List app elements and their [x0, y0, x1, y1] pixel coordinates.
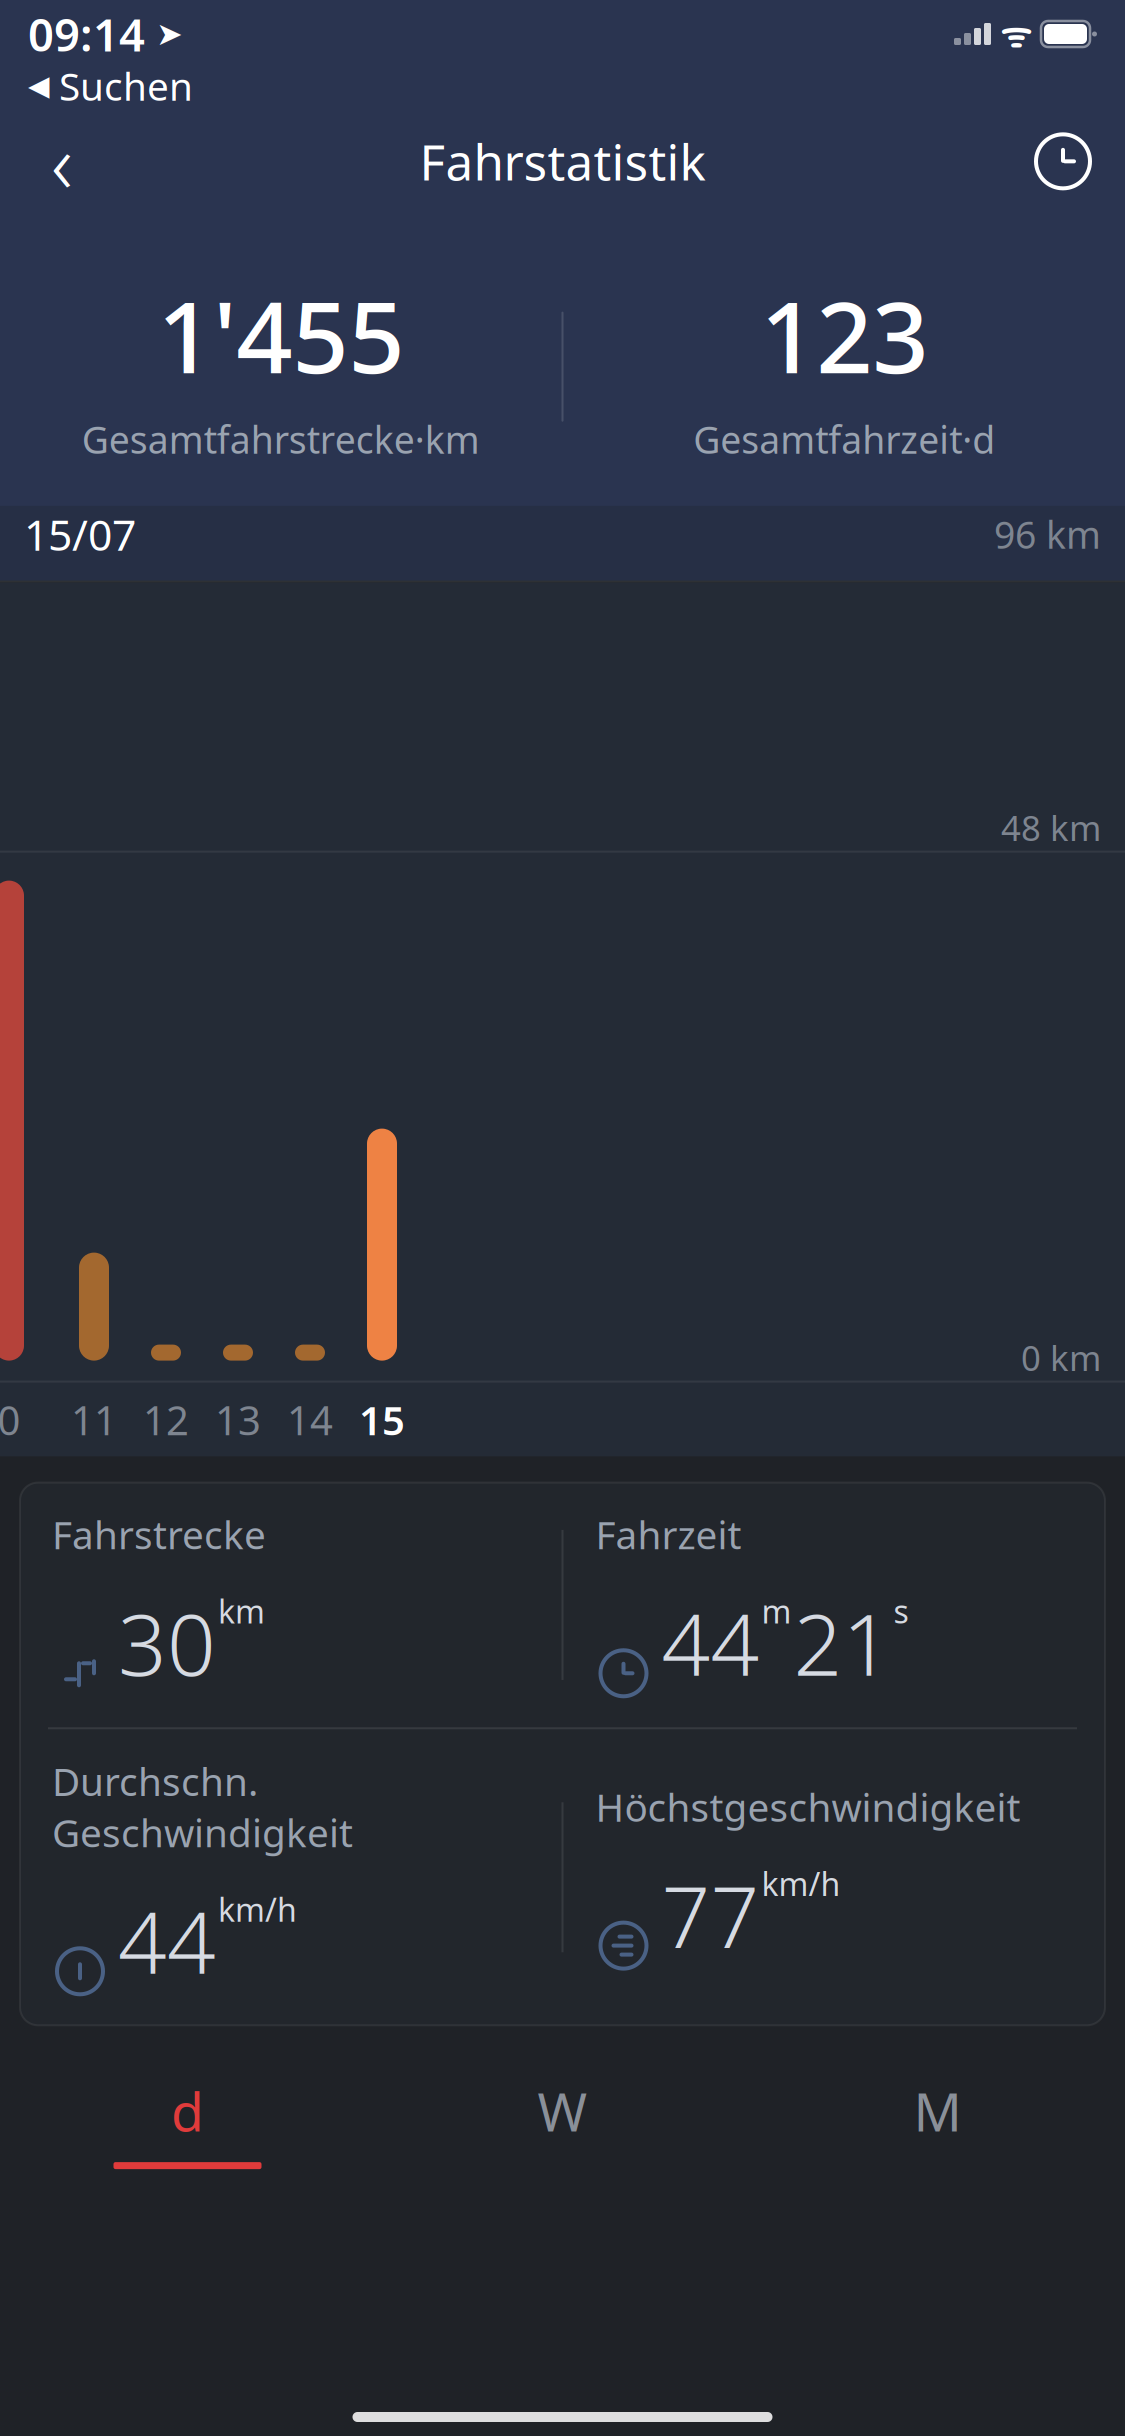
staticText: 14 [287, 1393, 333, 1446]
staticText: ᯤ [991, 11, 1041, 57]
staticText: km/h [218, 1888, 297, 1930]
staticText: km/h [761, 1862, 840, 1905]
staticText: 96 km [994, 509, 1101, 559]
staticText: km [218, 1590, 265, 1632]
staticText: 44 [661, 1586, 759, 1699]
staticText: ➤ [145, 16, 183, 52]
staticText: Gesamtfahrzeit·d [693, 414, 995, 464]
button[interactable]: ◀ [28, 60, 193, 111]
button[interactable]: d [0, 2055, 375, 2169]
staticText: 0 km [1021, 1335, 1101, 1381]
staticText: W [537, 2075, 587, 2146]
staticText: Höchstgeschwindigkeit [595, 1781, 1020, 1832]
staticText: 11 [71, 1393, 117, 1446]
staticText: s [893, 1590, 908, 1632]
staticText: ‹ [51, 106, 73, 216]
staticText: 21 [793, 1586, 891, 1699]
staticText: 13 [215, 1393, 261, 1446]
button[interactable]: M [750, 2055, 1125, 2169]
staticText: 123 [760, 269, 928, 400]
staticText: Fahrstatistik [419, 129, 705, 194]
staticText: Suchen [59, 60, 193, 111]
staticText: 44 [118, 1884, 216, 1997]
staticText: 09:14 [28, 4, 145, 64]
staticText: Fahrstrecke [52, 1509, 266, 1560]
staticText: ◀ [28, 70, 50, 102]
staticText: 15/07 [24, 506, 136, 563]
staticText: 1'455 [157, 269, 404, 400]
staticText: m [761, 1590, 791, 1632]
button[interactable]: Back [22, 121, 102, 201]
staticText: 48 km [1001, 805, 1101, 851]
staticText: Gesamtfahrstrecke·km [82, 414, 480, 464]
staticText: M [913, 2075, 961, 2146]
staticText: 0 [0, 1393, 20, 1446]
staticText: 77 [661, 1858, 759, 1972]
staticText: 12 [143, 1393, 189, 1446]
staticText: 15 [359, 1393, 405, 1446]
staticText: Durchschn. Geschwindigkeit [52, 1755, 353, 1858]
staticText: Fahrzeit [595, 1509, 741, 1560]
button[interactable]: History [1023, 121, 1103, 201]
staticText: 30 [118, 1586, 216, 1699]
staticText: d [171, 2075, 204, 2146]
button[interactable]: W [375, 2055, 750, 2169]
